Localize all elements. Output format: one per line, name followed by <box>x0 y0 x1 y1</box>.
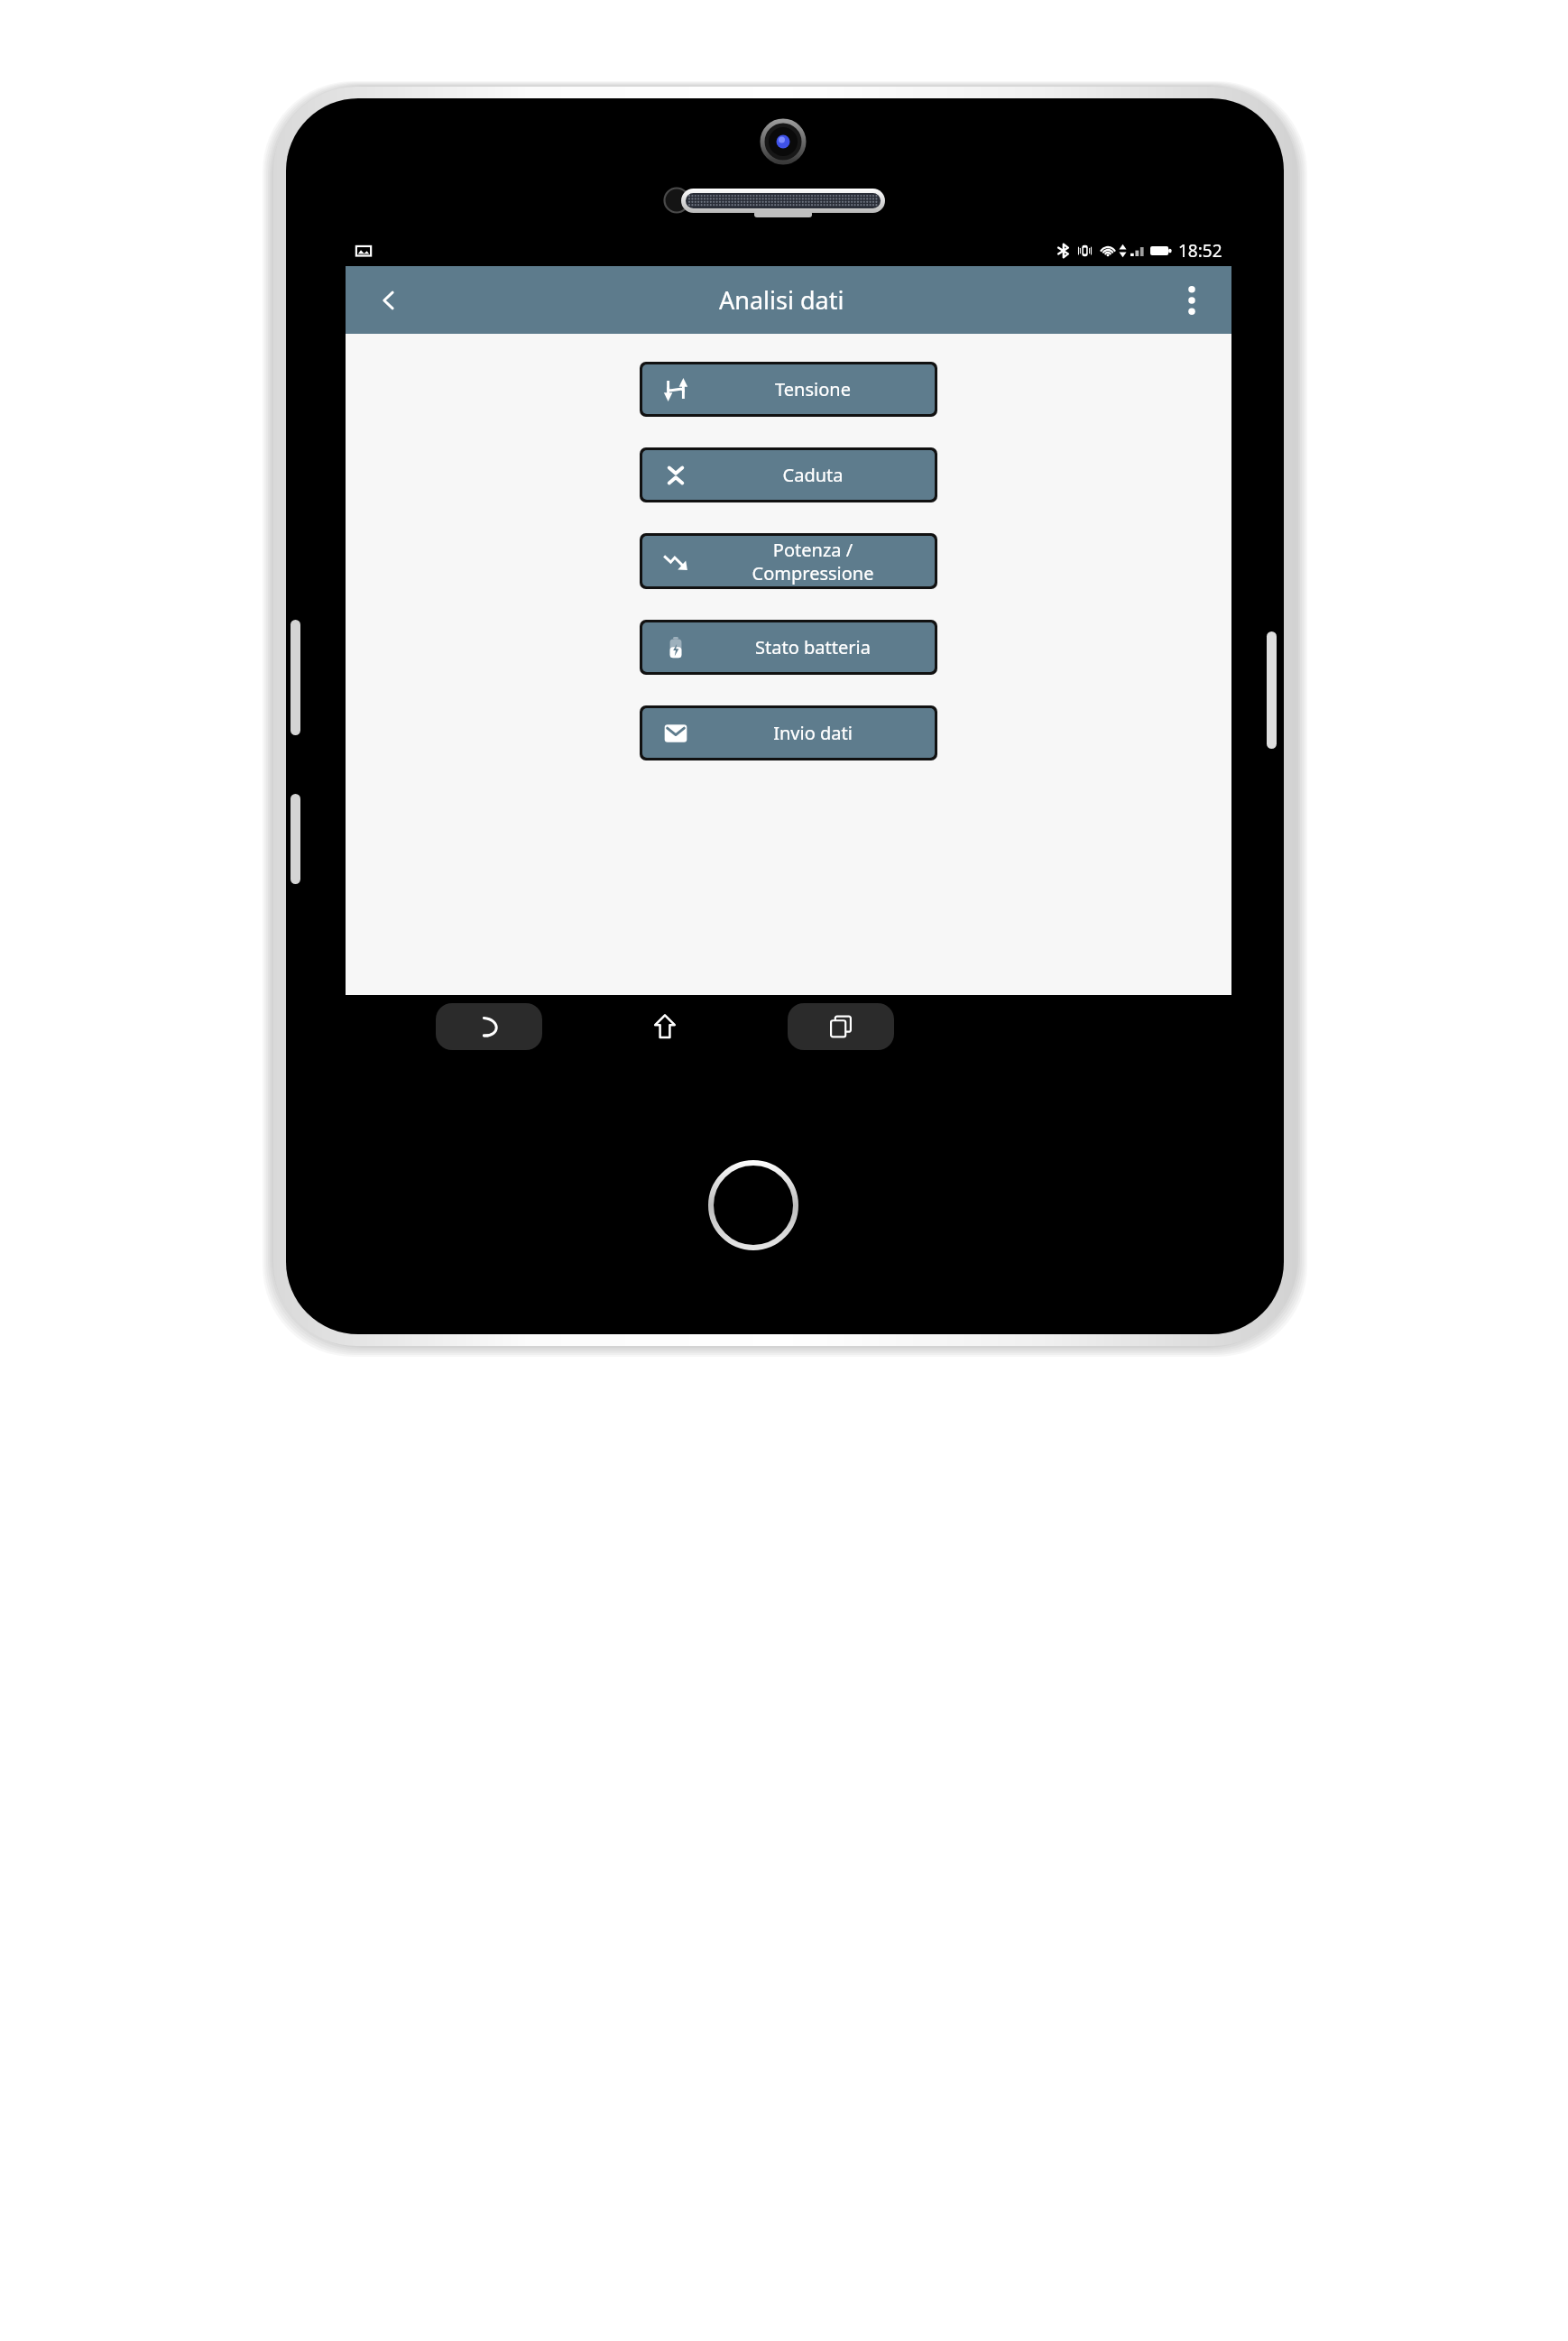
button[interactable]: Home <box>627 1003 703 1050</box>
staticText: Caduta <box>709 463 917 487</box>
button[interactable]: Invio dati <box>642 708 935 758</box>
staticText: Tensione <box>709 377 917 401</box>
button[interactable]: Home button <box>708 1160 798 1250</box>
button[interactable]: Back <box>365 277 412 324</box>
button[interactable]: Stato batteria <box>642 622 935 672</box>
staticText: Invio dati <box>709 721 917 745</box>
staticText: 18:52 <box>1178 239 1222 263</box>
staticText: Analisi dati <box>719 283 844 317</box>
staticText: Potenza / Compressione <box>709 538 917 585</box>
button[interactable]: Tensione <box>642 364 935 414</box>
button[interactable]: More options <box>1168 277 1215 324</box>
staticText: Stato batteria <box>709 635 917 659</box>
button[interactable]: Potenza / Compressione <box>642 536 935 586</box>
button[interactable]: Caduta <box>642 450 935 500</box>
button[interactable]: Recent apps <box>788 1003 894 1050</box>
button[interactable]: Back <box>436 1003 542 1050</box>
